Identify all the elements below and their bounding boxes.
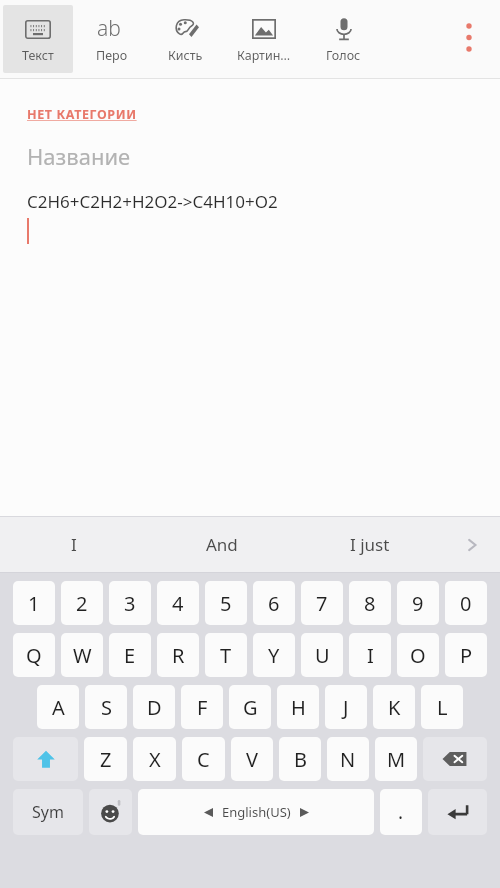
- staticText: X: [149, 746, 161, 773]
- staticText: Текст: [22, 47, 54, 64]
- staticText: P: [460, 642, 473, 669]
- staticText: J: [343, 694, 349, 721]
- staticText: C: [197, 746, 210, 773]
- staticText: Кисть: [168, 47, 203, 64]
- button[interactable]: Текст: [3, 5, 73, 73]
- staticText: V: [246, 746, 258, 773]
- staticText: D: [147, 694, 162, 721]
- button[interactable]: Z: [84, 737, 127, 781]
- staticText: 3: [124, 590, 136, 617]
- button[interactable]: 6: [253, 581, 295, 625]
- button[interactable]: D: [133, 685, 175, 729]
- staticText: G: [243, 694, 258, 721]
- button[interactable]: O: [397, 633, 439, 677]
- button[interactable]: W: [61, 633, 103, 677]
- button[interactable]: I: [0, 516, 148, 573]
- button[interactable]: 5: [205, 581, 247, 625]
- button[interactable]: I: [349, 633, 391, 677]
- button[interactable]: H: [277, 685, 319, 729]
- staticText: Перо: [96, 47, 128, 64]
- button[interactable]: T: [205, 633, 247, 677]
- staticText: S: [101, 694, 112, 721]
- button[interactable]: Backspace: [423, 737, 487, 781]
- button[interactable]: R: [157, 633, 199, 677]
- staticText: K: [388, 694, 401, 721]
- button[interactable]: G: [229, 685, 271, 729]
- button[interactable]: 8: [349, 581, 391, 625]
- staticText: Sym: [32, 801, 64, 823]
- staticText: Картин…: [237, 47, 291, 64]
- button[interactable]: 9: [397, 581, 439, 625]
- button[interactable]: Enter: [428, 789, 487, 835]
- button[interactable]: I just: [296, 516, 444, 573]
- button[interactable]: J: [325, 685, 367, 729]
- staticText: W: [73, 642, 92, 669]
- button[interactable]: And: [148, 516, 296, 573]
- staticText: Название: [27, 141, 131, 171]
- button[interactable]: Y: [253, 633, 295, 677]
- button[interactable]: V: [231, 737, 273, 781]
- button[interactable]: Кисть: [151, 5, 219, 73]
- button[interactable]: 0: [445, 581, 487, 625]
- button[interactable]: N: [327, 737, 369, 781]
- staticText: 5: [220, 590, 232, 617]
- button[interactable]: S: [85, 685, 127, 729]
- staticText: .: [398, 799, 404, 825]
- staticText: Q: [26, 642, 42, 669]
- staticText: H: [291, 694, 306, 721]
- button[interactable]: L: [421, 685, 463, 729]
- button[interactable]: Shift: [13, 737, 78, 781]
- button[interactable]: Голос: [309, 5, 377, 73]
- staticText: And: [206, 533, 238, 556]
- button[interactable]: M: [375, 737, 417, 781]
- button[interactable]: B: [279, 737, 321, 781]
- staticText: Z: [100, 746, 112, 773]
- button[interactable]: Sym: [13, 789, 83, 835]
- button[interactable]: 3: [109, 581, 151, 625]
- staticText: 1: [28, 590, 40, 617]
- button[interactable]: K: [373, 685, 415, 729]
- button[interactable]: E: [109, 633, 151, 677]
- staticText: 8: [364, 590, 376, 617]
- staticText: F: [197, 694, 208, 721]
- button[interactable]: 2: [61, 581, 103, 625]
- staticText: 6: [268, 590, 280, 617]
- button[interactable]: 7: [301, 581, 343, 625]
- button[interactable]: Q: [13, 633, 55, 677]
- button[interactable]: P: [445, 633, 487, 677]
- button[interactable]: F: [181, 685, 223, 729]
- staticText: I just: [350, 533, 390, 556]
- button[interactable]: More options: [438, 0, 500, 78]
- button[interactable]: Emoji: [89, 789, 132, 835]
- staticText: B: [294, 746, 307, 773]
- staticText: T: [220, 642, 232, 669]
- staticText: I: [367, 642, 374, 669]
- staticText: N: [340, 746, 356, 773]
- button[interactable]: More suggestions: [444, 516, 500, 573]
- staticText: Y: [268, 642, 280, 669]
- button[interactable]: abc: [79, 5, 145, 73]
- button[interactable]: Space, English(US): [138, 789, 374, 835]
- button[interactable]: Картин…: [225, 5, 303, 73]
- button[interactable]: 1: [13, 581, 55, 625]
- button[interactable]: НЕТ КАТЕГОРИИ: [27, 106, 137, 123]
- staticText: English(US): [222, 803, 291, 821]
- staticText: I: [71, 533, 77, 556]
- staticText: abc: [97, 14, 127, 44]
- button[interactable]: 4: [157, 581, 199, 625]
- staticText: O: [410, 642, 426, 669]
- staticText: U: [315, 642, 330, 669]
- staticText: Голос: [326, 47, 361, 64]
- button[interactable]: X: [133, 737, 176, 781]
- button[interactable]: C: [182, 737, 225, 781]
- staticText: 7: [316, 590, 328, 617]
- staticText: C2H6+C2H2+H2O2->C4H10+O2: [27, 190, 278, 213]
- button[interactable]: U: [301, 633, 343, 677]
- button[interactable]: A: [37, 685, 79, 729]
- staticText: 4: [172, 590, 184, 617]
- staticText: НЕТ КАТЕГОРИИ: [27, 106, 137, 123]
- staticText: M: [387, 746, 406, 773]
- button[interactable]: .: [380, 789, 422, 835]
- staticText: 2: [76, 590, 88, 617]
- staticText: 0: [460, 590, 472, 617]
